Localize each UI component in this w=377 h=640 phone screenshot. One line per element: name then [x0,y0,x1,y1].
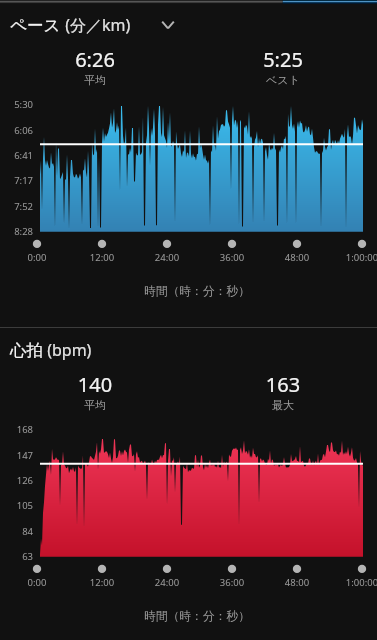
staticText: 5:30 [0,98,33,111]
staticText: 36:00 [197,576,267,589]
staticText: 7:17 [0,174,33,187]
staticText: 48:00 [262,251,332,264]
staticText: 168 [0,423,33,436]
staticText: 126 [0,474,33,487]
button[interactable]: 心拍 [10,336,200,364]
staticText: 平均 [35,398,155,412]
staticText: 63 [0,550,33,563]
staticText: 12:00 [67,251,137,264]
staticText: (bpm) [43,339,92,361]
staticText: 163 [223,371,343,398]
staticText: 7:52 [0,200,33,213]
staticText: 6:26 [35,46,155,73]
staticText: 8:28 [0,225,33,238]
staticText: 最大 [223,398,343,412]
staticText: 0:00 [2,576,72,589]
staticText: ペース [10,15,61,36]
staticText: 12:00 [67,576,137,589]
staticText: 24:00 [132,576,202,589]
staticText: 147 [0,449,33,462]
button[interactable]: ペース [10,11,200,39]
staticText: (分／km) [61,14,131,36]
staticText: 6:41 [0,149,33,162]
staticText: 平均 [35,73,155,87]
staticText: 105 [0,499,33,512]
staticText: 24:00 [132,251,202,264]
staticText: 6:06 [0,124,33,137]
other: Expand pace chart [161,18,175,32]
staticText: 140 [35,371,155,398]
staticText: ベスト [223,73,343,87]
staticText: 時間（時：分：秒） [87,284,307,299]
staticText: 1:00:00 [327,576,377,589]
staticText: 48:00 [262,576,332,589]
staticText: 84 [0,525,33,538]
staticText: 心拍 [10,340,43,361]
staticText: 1:00:00 [327,251,377,264]
staticText: 時間（時：分：秒） [87,609,307,624]
staticText: 0:00 [2,251,72,264]
staticText: 5:25 [223,46,343,73]
staticText: 36:00 [197,251,267,264]
